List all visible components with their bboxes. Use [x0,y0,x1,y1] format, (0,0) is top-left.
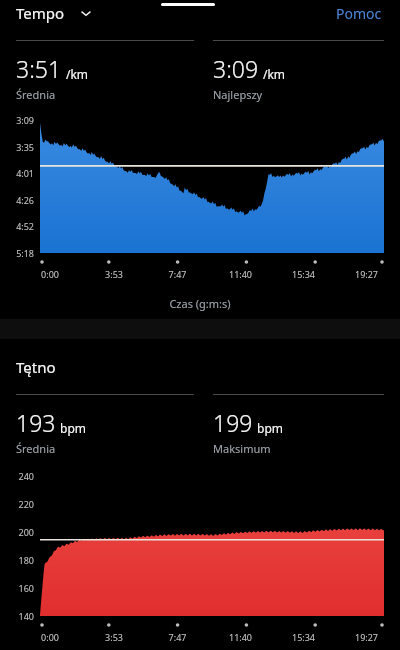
button[interactable]: Tempo [16,3,99,23]
staticText: bpm [60,420,86,436]
staticText: Tempo [16,3,65,23]
staticText: 180 [0,554,34,566]
staticText: 11:40 [209,268,272,280]
staticText: 11:40 [209,631,272,643]
button[interactable]: 3:51 [16,40,194,102]
staticText: 193 [16,407,56,438]
staticText: 199 [213,407,253,438]
staticText: 15:34 [272,631,335,643]
staticText: 200 [0,526,34,538]
staticText: 3:53 [82,268,146,280]
button[interactable]: 193 [16,394,194,456]
staticText: 19:27 [335,631,398,643]
staticText: 3:51 [16,53,62,84]
staticText: 4:26 [0,194,34,206]
staticText: Najlepszy [213,87,263,102]
staticText: 4:01 [0,167,34,179]
button[interactable]: 3:09 [213,40,384,102]
staticText: 15:34 [272,268,335,280]
staticText: /km [263,66,286,82]
staticText: 7:47 [146,631,209,643]
staticText: 7:47 [146,268,209,280]
staticText: /km [66,66,89,82]
staticText: 4:52 [0,220,34,232]
staticText: bpm [257,420,283,436]
staticText: 3:53 [82,631,146,643]
staticText: Średnia [16,441,56,456]
staticText: 3:35 [0,141,34,153]
staticText: 220 [0,498,34,510]
staticText: 240 [0,470,34,482]
staticText: 160 [0,582,34,594]
staticText: Średnia [16,87,56,102]
staticText: 5:18 [0,247,34,259]
staticText: Tętno [16,357,56,377]
staticText: Czas (g:m:s) [0,296,400,311]
staticText: 19:27 [335,268,398,280]
staticText: 0:00 [18,631,82,643]
staticText: 140 [0,610,34,622]
staticText: 0:00 [18,268,82,280]
button[interactable]: 199 [213,394,384,456]
button[interactable]: Pomoc [332,0,386,26]
staticText: 3:09 [0,114,34,126]
staticText: Maksimum [213,441,271,456]
staticText: Pomoc [336,4,382,22]
staticText: 3:09 [213,53,259,84]
